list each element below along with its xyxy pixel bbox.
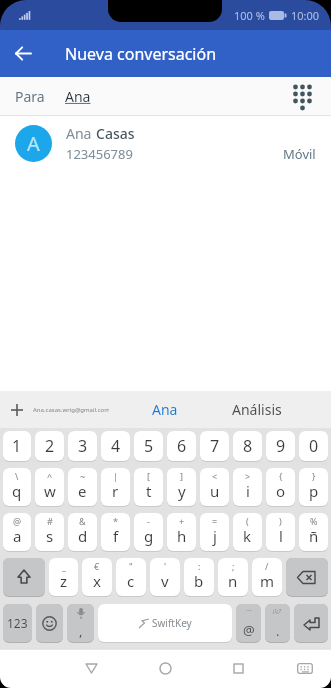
button[interactable]: : [184,558,214,597]
button[interactable]: | [101,468,130,507]
button[interactable]: ) [266,513,295,552]
button[interactable]: 5 [134,431,163,462]
button[interactable] [0,30,47,77]
button[interactable]: Ana [109,391,221,428]
button[interactable]: & [68,513,97,552]
button[interactable] [36,604,63,643]
staticText: m [260,571,275,591]
staticText: 3 [78,435,88,457]
staticText: f [113,526,119,546]
staticText: = [212,515,218,527]
button[interactable]: ^ [35,468,64,507]
staticText: a [13,526,22,546]
button[interactable]: 4 [101,431,130,462]
button[interactable] [285,649,325,688]
button[interactable] [286,558,328,597]
button[interactable]: } [299,468,328,507]
button[interactable]: 9 [266,431,295,462]
staticText: n [228,571,238,591]
button[interactable] [71,649,111,688]
button[interactable]: - [134,513,163,552]
staticText: u [210,481,220,501]
button[interactable]: [ [134,468,163,507]
button[interactable]: 6 [167,431,196,462]
button[interactable]: 1 [3,431,31,462]
button[interactable]: 123 [3,604,32,643]
staticText: 1 [12,435,22,457]
button[interactable]: A [0,116,331,171]
button[interactable]: % [299,513,328,552]
button[interactable]: € [82,558,112,597]
staticText: * [113,515,118,527]
button[interactable]: = [200,513,229,552]
staticText: e [78,481,87,501]
staticText: k [243,526,252,546]
staticText: 100 % [234,8,265,23]
button[interactable]: ··· [236,604,261,643]
button[interactable]: ¡!¿? [265,604,290,643]
staticText: Nueva conversación [65,43,217,65]
staticText: o [276,481,286,501]
button[interactable]: ] [167,468,196,507]
staticText: € [94,560,100,572]
staticText: 7 [210,435,220,457]
button[interactable]: 8 [233,431,262,462]
staticText: 5 [144,435,154,457]
staticText: l [279,526,283,546]
button[interactable]: \ [3,468,31,507]
button[interactable]: + [167,513,196,552]
staticText: [ [147,470,150,482]
staticText: ^ [47,470,53,482]
staticText: 8 [243,435,253,457]
button[interactable] [218,649,258,688]
button[interactable]: # [35,513,64,552]
button[interactable]: ( [233,513,262,552]
button[interactable]: ~ [68,468,97,507]
staticText: c [127,571,135,591]
staticText: + [179,515,185,527]
staticText: t [146,481,152,501]
button[interactable]: * [101,513,130,552]
button[interactable]: 0 [299,431,328,462]
button[interactable]: 2 [35,431,64,462]
staticText: ~ [80,470,86,482]
button[interactable]: > [233,468,262,507]
staticText: 6 [177,435,187,457]
button[interactable]: SwiftKey [98,604,232,643]
staticText: ¡!¿? [273,607,282,615]
staticText: ; [232,560,235,572]
staticText: ] [180,470,183,482]
staticText: 10:00 [291,8,320,23]
button[interactable]: _ [49,558,78,597]
button[interactable]: @ [3,513,31,552]
staticText: h [177,526,187,546]
button[interactable]: { [266,468,295,507]
staticText: & [79,515,86,527]
button[interactable] [288,82,316,110]
button[interactable]: Ana.casas.wrig@gmail.com [33,391,109,428]
staticText: : [198,560,201,572]
staticText: Ana [66,124,96,143]
staticText: i [246,481,250,501]
button[interactable]: / [252,558,282,597]
staticText: 123 [7,615,28,631]
staticText: 123456789 [66,145,133,163]
staticText: Casas [96,124,135,143]
button[interactable]: ' [150,558,180,597]
staticText: - [147,515,150,527]
button[interactable]: Análisis [221,391,293,428]
staticText: @ [13,515,22,527]
button[interactable]: ; [218,558,248,597]
button[interactable] [0,391,33,428]
button[interactable]: " [116,558,146,597]
staticText: ñ [309,526,319,546]
staticText: < [212,470,218,482]
button[interactable]: 7 [200,431,229,462]
button[interactable] [3,558,45,597]
button[interactable] [145,649,185,688]
button[interactable] [294,604,328,643]
staticText: ) [279,515,282,527]
button[interactable]: , [67,604,94,643]
button[interactable]: 3 [68,431,97,462]
button[interactable]: < [200,468,229,507]
